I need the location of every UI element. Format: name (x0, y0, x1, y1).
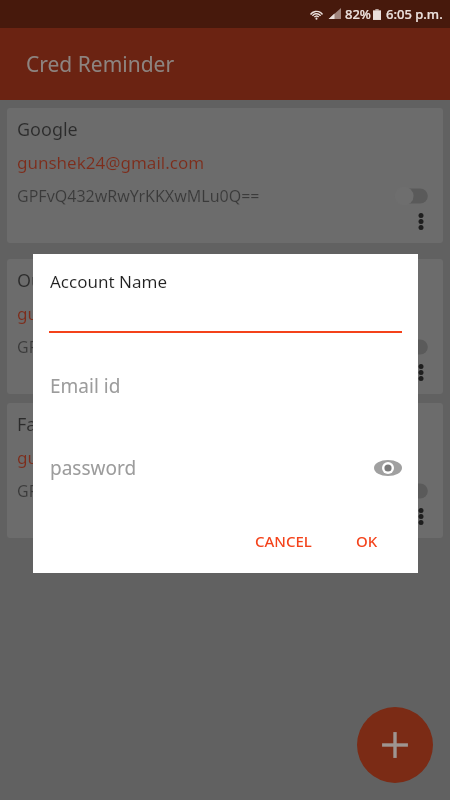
staticText: 82% (345, 5, 371, 23)
button[interactable]: More options (408, 504, 434, 529)
staticText: GPFvQ432wRwYrKKXwMLu0Q== (17, 480, 260, 502)
staticText: gunshek24@gmail.com (17, 151, 205, 174)
staticText: Google (17, 117, 78, 142)
staticText: Facebook (17, 412, 98, 437)
button[interactable]: Add credential (357, 707, 433, 783)
button[interactable]: Toggle reminder (391, 478, 431, 504)
button[interactable]: More options (408, 360, 434, 385)
staticText: OK (356, 531, 378, 551)
button[interactable]: Account Name (50, 270, 167, 293)
button[interactable]: password (50, 455, 137, 481)
staticText: gunshek24@gmail.com (17, 446, 205, 469)
button[interactable]: Google (7, 108, 443, 243)
staticText: GPFvQ432wRwYrKKXwMLu0Q== (17, 185, 260, 207)
button[interactable]: OK (348, 523, 386, 559)
button[interactable]: Email id (50, 373, 121, 399)
staticText: Cred Reminder (26, 50, 175, 79)
button[interactable]: Outlook (7, 259, 443, 394)
staticText: Outlook (17, 268, 85, 293)
button[interactable]: More options (408, 209, 434, 234)
button[interactable]: Toggle reminder (391, 334, 431, 360)
staticText: gunshek24@gmail.com (17, 302, 205, 325)
button[interactable]: Show password (371, 451, 405, 485)
staticText: CANCEL (255, 531, 312, 551)
button[interactable]: Toggle reminder (391, 183, 431, 209)
button[interactable]: CANCEL (247, 523, 320, 559)
staticText: 6:05 p.m. (386, 5, 443, 23)
staticText: GPFvQ432wRwYrKKXwMLu0Q== (17, 336, 260, 358)
button[interactable]: Facebook (7, 403, 443, 538)
